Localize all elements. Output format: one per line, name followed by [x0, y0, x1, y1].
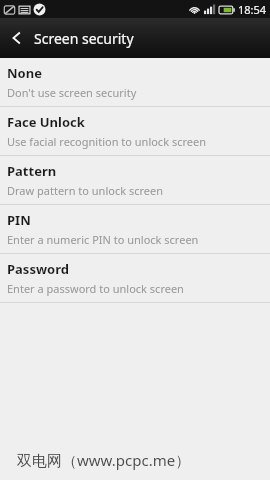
button[interactable]: Face Unlock: [0, 107, 270, 155]
button[interactable]: PIN: [0, 205, 270, 253]
button[interactable]: Password: [0, 254, 270, 302]
staticText: Don't use screen security: [7, 85, 137, 100]
staticText: None: [7, 64, 42, 82]
staticText: Draw pattern to unlock screen: [7, 183, 163, 198]
staticText: Enter a password to unlock screen: [7, 281, 184, 296]
staticText: Enter a numeric PIN to unlock screen: [7, 232, 199, 247]
staticText: Screen security: [34, 29, 134, 48]
staticText: 18:54: [238, 2, 267, 17]
staticText: Face Unlock: [7, 113, 85, 131]
button[interactable]: Pattern: [0, 156, 270, 204]
staticText: 双电网（www.pcpc.me）: [17, 450, 191, 470]
staticText: Pattern: [7, 162, 57, 180]
staticText: PIN: [7, 211, 31, 229]
button[interactable]: Back: [0, 18, 34, 58]
staticText: Password: [7, 260, 69, 278]
button[interactable]: None: [0, 58, 270, 106]
staticText: Use facial recognition to unlock screen: [7, 134, 206, 149]
